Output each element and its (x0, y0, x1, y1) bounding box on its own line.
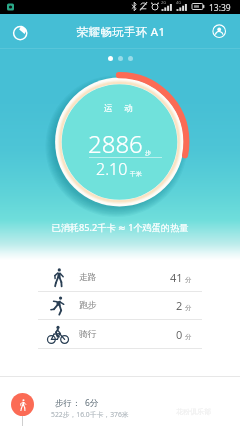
staticText: 走路 (79, 272, 97, 283)
staticText: 分 (185, 333, 192, 341)
staticText: 0 (176, 327, 183, 342)
staticText: 2886 (88, 127, 143, 160)
staticText: 千米 (130, 170, 142, 178)
staticText: 6分 (85, 397, 99, 409)
button[interactable]: 走路 (0, 264, 240, 292)
staticText: 41 (170, 270, 183, 285)
staticText: 已消耗85.2千卡 ≈ 1个鸡蛋的热量 (0, 221, 240, 234)
button[interactable]: Profile (201, 14, 240, 49)
staticText: 步行： (55, 398, 81, 409)
staticText: 运 动 (104, 102, 134, 114)
staticText: 花粉俱乐部 (176, 407, 211, 416)
button[interactable]: 骑行 (0, 320, 240, 349)
button[interactable]: 步行： (0, 393, 240, 416)
staticText: 2.10 (96, 158, 128, 180)
staticText: 跑步 (79, 300, 97, 311)
staticText: 分 (185, 276, 192, 284)
staticText: 13:39 (209, 2, 231, 14)
button[interactable]: 跑步 (0, 292, 240, 320)
staticText: 522步，16.0千卡，376米 (51, 410, 129, 419)
staticText: 2G (161, 0, 167, 5)
staticText: 步 (145, 149, 151, 157)
staticText: 分 (185, 304, 192, 312)
staticText: 骑行 (79, 329, 97, 340)
button[interactable]: Page 3 (128, 56, 133, 61)
button[interactable]: Band device (0, 14, 41, 49)
staticText: 2 (176, 298, 183, 313)
button[interactable]: Page 2 (118, 56, 123, 61)
button[interactable]: Page 1 (108, 56, 113, 61)
staticText: 荣耀畅玩手环 A1 (41, 24, 201, 40)
staticText: 4G (176, 0, 182, 5)
